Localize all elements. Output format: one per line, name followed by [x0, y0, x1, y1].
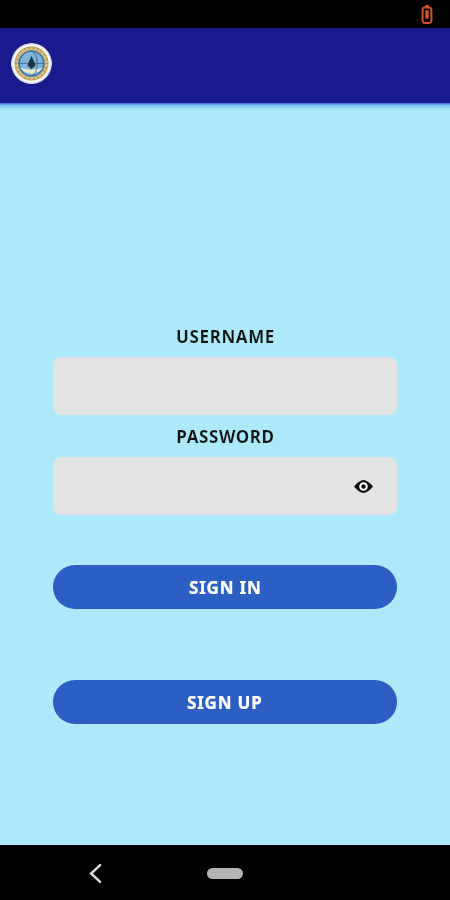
- staticText: SIGN UP: [187, 691, 263, 714]
- button[interactable]: Home: [195, 859, 255, 887]
- button[interactable]: Show password: [351, 474, 375, 498]
- button[interactable]: SIGN UP: [53, 680, 397, 724]
- button[interactable]: Back: [78, 856, 112, 890]
- staticText: USERNAME: [176, 325, 275, 348]
- other: App logo: [11, 43, 52, 84]
- staticText: SIGN IN: [189, 576, 262, 599]
- button[interactable]: SIGN IN: [53, 565, 397, 609]
- button[interactable]: Show password: [53, 457, 397, 515]
- staticText: PASSWORD: [176, 425, 275, 448]
